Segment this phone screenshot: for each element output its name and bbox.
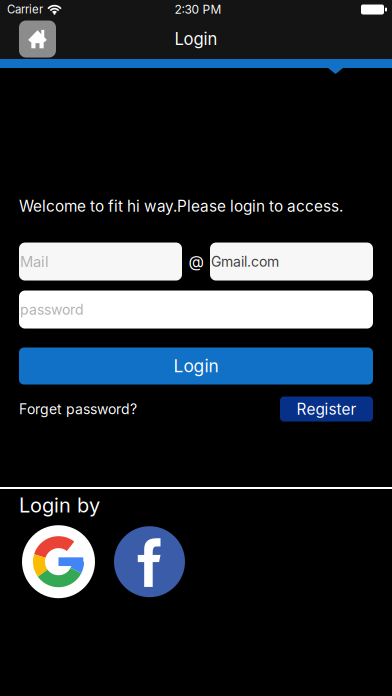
staticText: Mail [20, 253, 49, 270]
staticText: Welcome to fit hi way.Please login to ac… [19, 197, 343, 216]
button[interactable]: Login [19, 348, 373, 385]
staticText: Login [174, 29, 217, 49]
staticText: @ [188, 252, 203, 271]
staticText: Login by [19, 493, 100, 517]
staticText: Forget password? [19, 401, 137, 417]
staticText: Gmail.com [211, 253, 279, 270]
button[interactable]: Home [19, 20, 56, 57]
button[interactable]: Sign in with Facebook [114, 526, 185, 597]
staticText: Register [296, 400, 356, 418]
button[interactable]: Register [280, 397, 373, 422]
staticText: password [20, 301, 84, 318]
staticText: Login [173, 356, 218, 377]
button[interactable]: Forget password? [19, 401, 137, 417]
staticText: 2:30 PM [174, 2, 221, 17]
button[interactable]: Sign in with Google [22, 525, 95, 598]
staticText: Carrier [7, 3, 43, 16]
